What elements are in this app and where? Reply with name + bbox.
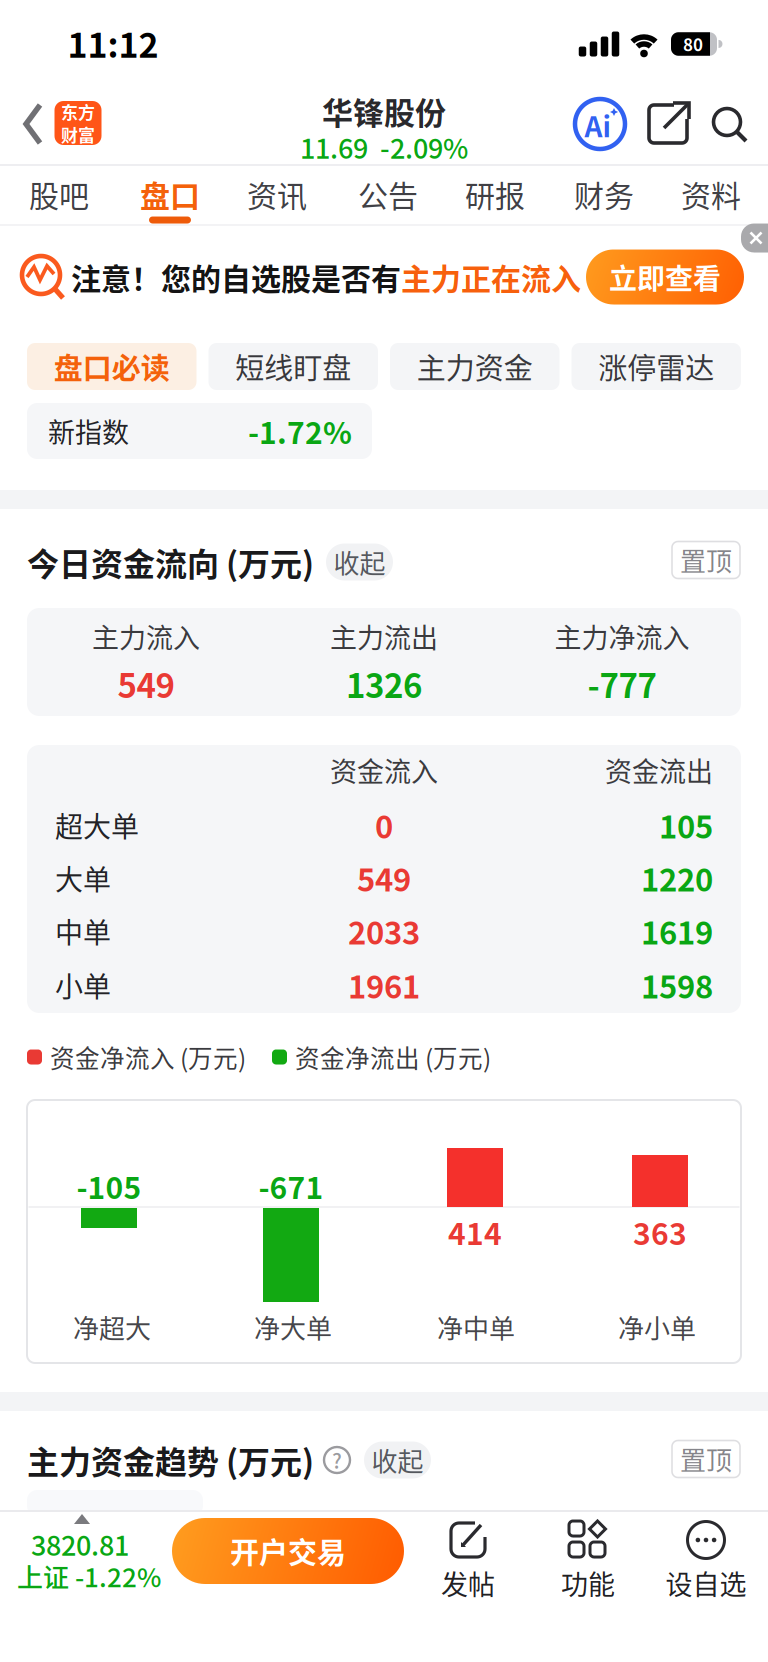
staticText: 中单 [55, 911, 111, 951]
staticText: 363 [633, 1210, 687, 1254]
staticText: 资料 [681, 172, 741, 216]
staticText: 资金净流入 (万元) [50, 1039, 246, 1075]
staticText: 注意！您的自选股是否有 [71, 255, 401, 299]
staticText: 11.69 -2.09% [300, 127, 468, 167]
staticText: 资金净流出 (万元) [295, 1039, 491, 1075]
staticText: 新指数 [48, 411, 129, 451]
staticText: 收起 [371, 1441, 423, 1479]
staticText: 资金流入 [330, 750, 438, 790]
staticText: -671 [258, 1164, 323, 1208]
staticText: 财富 [61, 122, 95, 147]
staticText: ? [332, 1445, 342, 1474]
staticText: 资讯 [247, 172, 307, 216]
staticText: 涨停雷达 [598, 345, 714, 387]
staticText: 置顶 [680, 1440, 732, 1478]
staticText: 股吧 [29, 172, 89, 216]
staticText: 盘口必读 [54, 345, 170, 387]
staticText: 开户交易 [230, 1530, 346, 1572]
staticText: 净中单 [437, 1308, 515, 1346]
staticText: 主力资金 [417, 345, 533, 387]
staticText: 研报 [465, 172, 525, 216]
staticText: 公告 [358, 172, 418, 216]
staticText: 资金流出 [605, 750, 713, 790]
staticText: -1.72% [248, 409, 352, 453]
staticText: 财务 [574, 172, 634, 216]
staticText: Ai [584, 105, 611, 145]
staticText: 1598 [641, 963, 713, 1007]
staticText: 净超大 [73, 1308, 151, 1346]
staticText: 1619 [641, 909, 713, 953]
staticText: 主力流入 [92, 617, 200, 656]
staticText: 1220 [641, 856, 713, 900]
staticText: 414 [448, 1210, 502, 1254]
staticText: 主力流出 [330, 617, 438, 656]
staticText: 549 [117, 660, 174, 707]
staticText: -105 [76, 1164, 141, 1208]
staticText: 3820.81 [31, 1524, 129, 1564]
staticText: 立即查看 [609, 257, 721, 297]
staticText: 置顶 [680, 541, 732, 579]
staticText: 1326 [346, 660, 422, 707]
staticText: 发帖 [441, 1563, 495, 1603]
staticText: 105 [659, 803, 713, 847]
staticText: 80 [683, 32, 703, 56]
staticText: 华锋股份 [322, 89, 446, 133]
staticText: 549 [357, 856, 411, 900]
staticText: -777 [587, 660, 656, 707]
staticText: 超大单 [55, 805, 139, 845]
staticText: 上证 -1.22% [17, 1557, 161, 1595]
staticText: 主力正在流入 [401, 255, 581, 299]
staticText: 短线盯盘 [235, 345, 351, 387]
staticText: 今日资金流向 (万元) [27, 539, 314, 585]
staticText: 盘口 [140, 172, 200, 216]
staticText: 设自选 [665, 1563, 746, 1603]
staticText: 2033 [348, 909, 420, 953]
staticText: 净大单 [254, 1308, 332, 1346]
staticText: 收起 [333, 543, 385, 581]
staticText: 11:12 [67, 18, 158, 68]
staticText: 主力资金趋势 (万元) [27, 1437, 314, 1483]
staticText: 大单 [55, 858, 111, 898]
staticText: 1961 [348, 963, 420, 1007]
staticText: 东方 [61, 99, 95, 124]
staticText: 0 [375, 803, 393, 847]
staticText: 功能 [561, 1563, 615, 1603]
staticText: 主力净流入 [554, 617, 689, 656]
staticText: 小单 [55, 965, 111, 1005]
staticText: 净小单 [618, 1308, 696, 1346]
